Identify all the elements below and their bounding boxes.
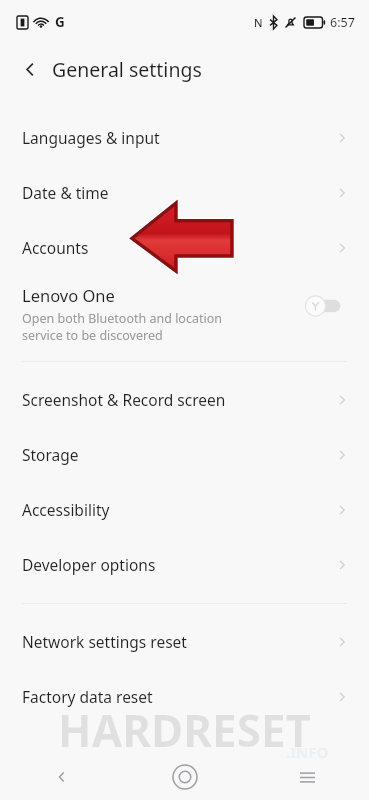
staticText: .INFO xyxy=(286,742,329,762)
button[interactable]: Home xyxy=(123,754,246,800)
button[interactable]: Factory data reset xyxy=(0,669,369,724)
staticText: Open both Bluetooth and location service… xyxy=(22,310,222,344)
staticText: N xyxy=(254,15,263,30)
staticText: Factory data reset xyxy=(22,686,153,707)
staticText: HARDRESET xyxy=(58,700,311,760)
button[interactable]: Back xyxy=(0,754,123,800)
button[interactable]: Accounts xyxy=(0,220,369,275)
staticText: Screenshot & Record screen xyxy=(22,389,226,410)
staticText: Languages & input xyxy=(22,127,160,148)
button[interactable]: Back xyxy=(14,53,46,85)
staticText: General settings xyxy=(52,56,202,83)
button[interactable]: Recent apps xyxy=(246,754,369,800)
staticText: Date & time xyxy=(22,182,109,203)
button[interactable]: Developer options xyxy=(0,537,369,592)
button[interactable]: Storage xyxy=(0,427,369,482)
staticText: Accounts xyxy=(22,237,89,258)
button[interactable]: Network settings reset xyxy=(0,614,369,669)
staticText: 6:57 xyxy=(330,14,355,31)
button[interactable]: Accessibility xyxy=(0,482,369,537)
staticText: Storage xyxy=(22,444,79,465)
staticText: Network settings reset xyxy=(22,631,187,652)
staticText: Accessibility xyxy=(22,499,110,520)
staticText: G xyxy=(55,13,65,31)
button[interactable]: Lenovo One xyxy=(0,275,369,353)
staticText: Developer options xyxy=(22,554,156,575)
button[interactable]: Languages & input xyxy=(0,110,369,165)
button[interactable]: Date & time xyxy=(0,165,369,220)
button[interactable]: Lenovo One toggle xyxy=(303,295,351,317)
staticText: Lenovo One xyxy=(22,284,115,306)
button[interactable]: Screenshot & Record screen xyxy=(0,372,369,427)
